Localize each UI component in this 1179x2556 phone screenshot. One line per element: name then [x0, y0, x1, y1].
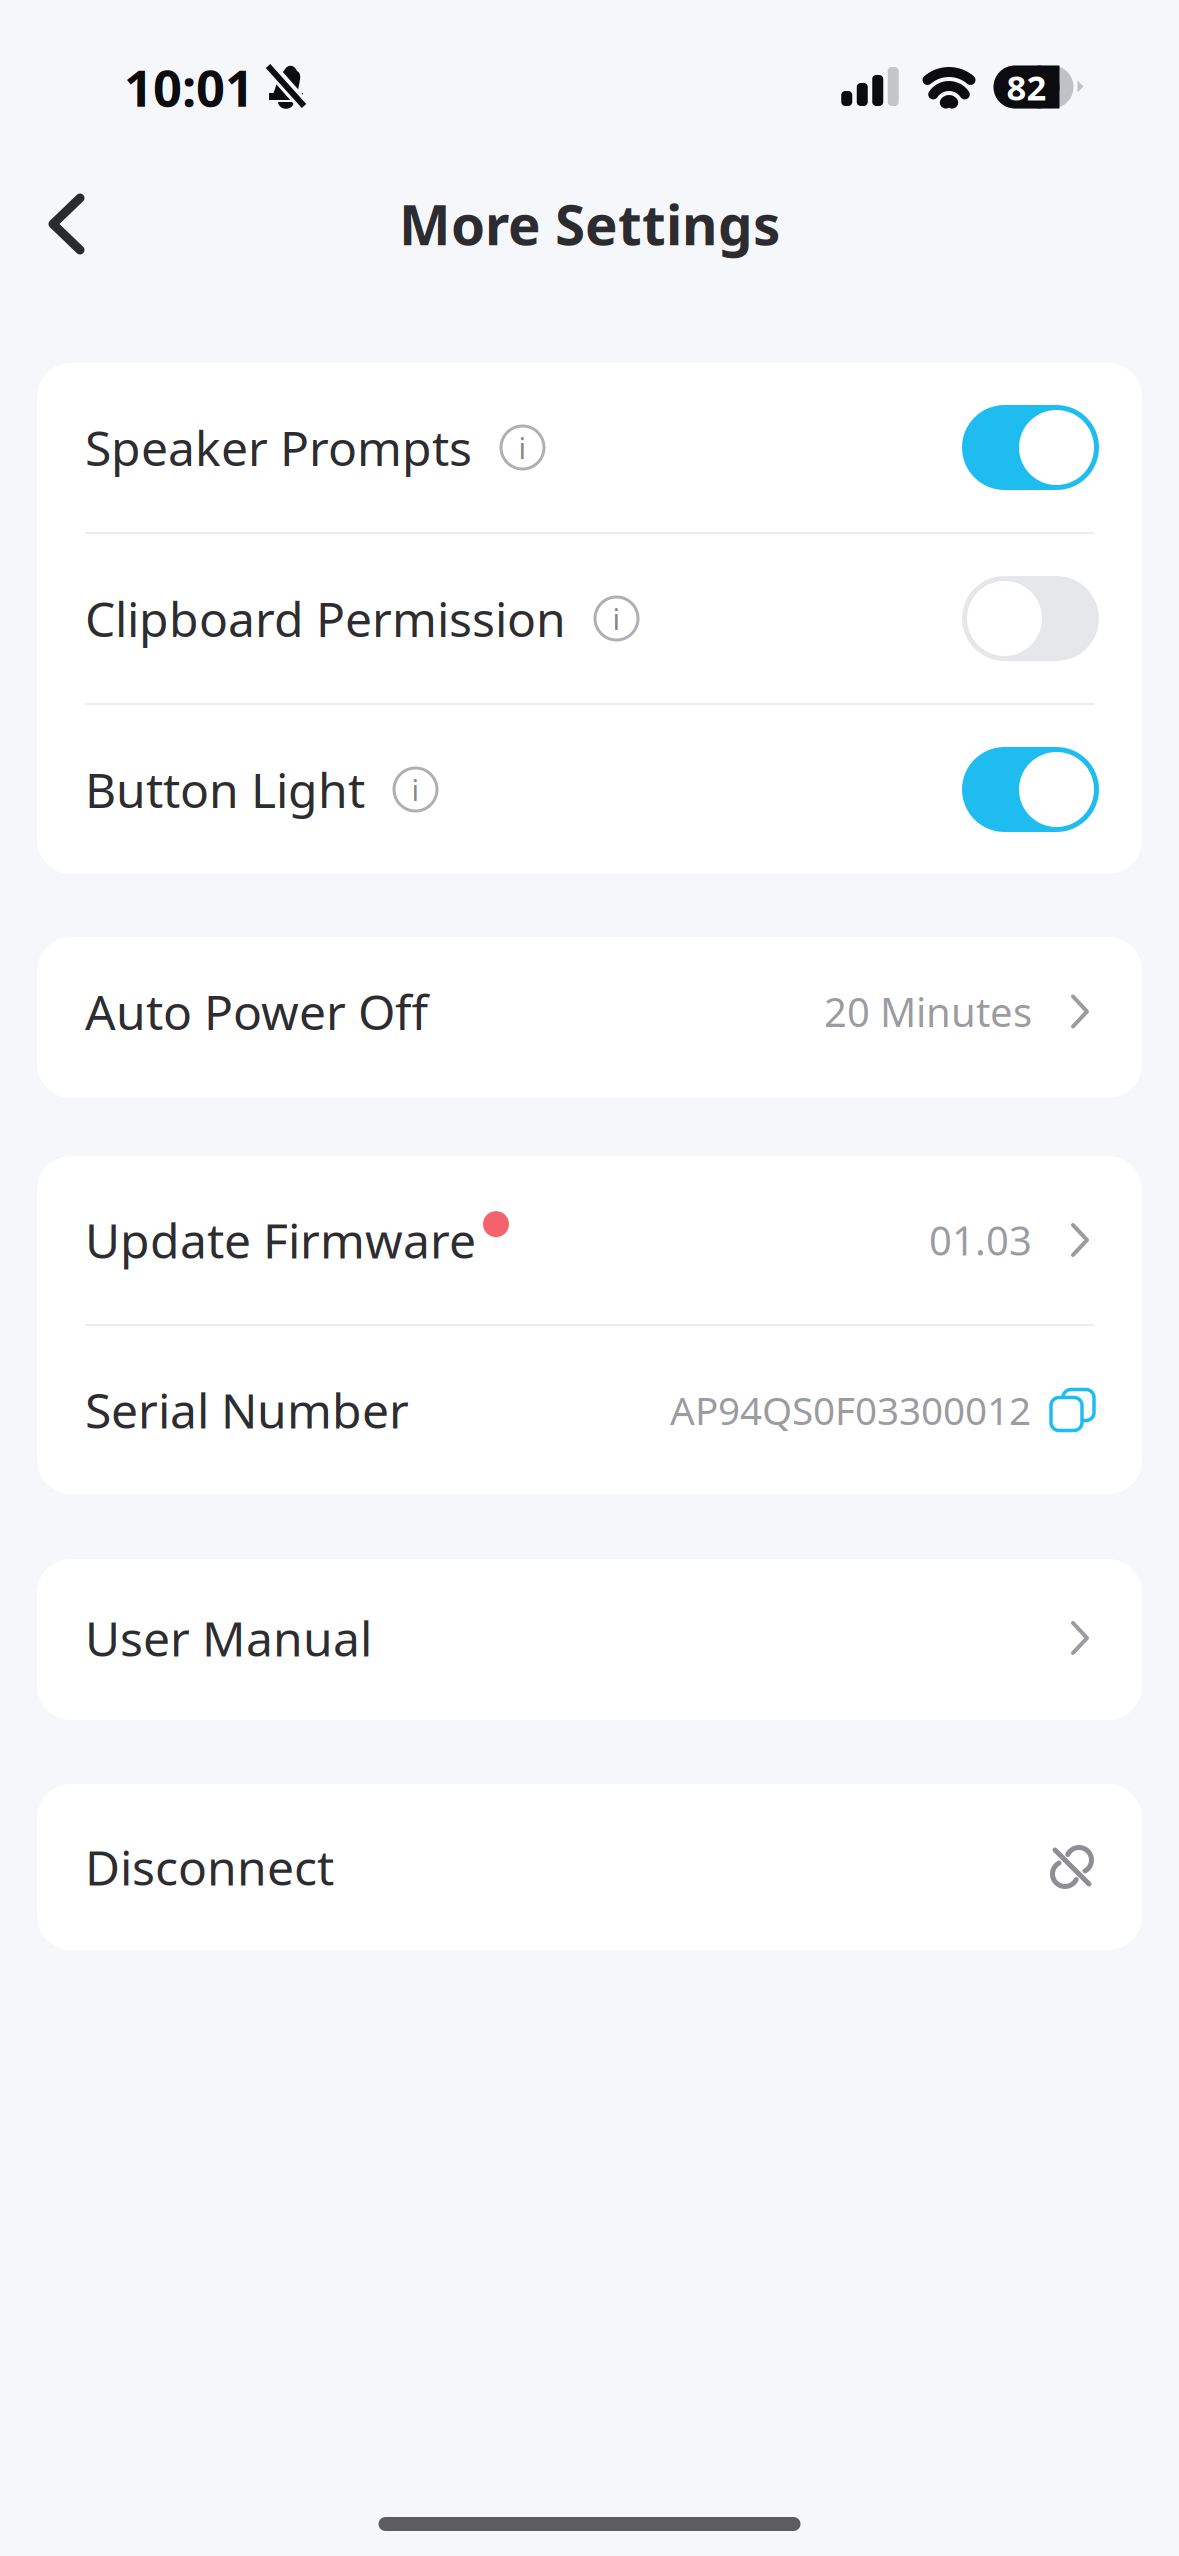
staticText: Serial Number — [85, 1378, 409, 1442]
staticText: AP94QS0F03300012 — [670, 1384, 1031, 1436]
staticText: i — [612, 599, 620, 638]
staticText: i — [518, 428, 526, 467]
button[interactable]: Back — [0, 171, 115, 277]
staticText: 10:01 — [124, 53, 254, 121]
staticText: Clipboard Permission — [85, 587, 566, 650]
staticText: Button Light — [85, 758, 365, 821]
staticText: Auto Power Off — [85, 980, 428, 1043]
button[interactable]: Update Firmware — [37, 1156, 1142, 1324]
staticText: More Settings — [399, 188, 780, 260]
button[interactable]: Clipboard Permission — [37, 534, 1142, 703]
button[interactable]: Auto Power Off — [37, 937, 1142, 1098]
staticText: 01.03 — [929, 1213, 1032, 1266]
button[interactable]: Serial Number — [37, 1326, 1142, 1494]
button[interactable]: Disconnect — [37, 1784, 1142, 1950]
button[interactable]: Speaker Prompts — [37, 363, 1142, 532]
button[interactable]: User Manual — [37, 1559, 1142, 1720]
staticText: User Manual — [85, 1606, 372, 1670]
staticText: i — [411, 770, 419, 809]
staticText: 82 — [1006, 64, 1046, 110]
staticText: 20 Minutes — [824, 985, 1032, 1038]
staticText: Speaker Prompts — [85, 416, 472, 479]
staticText: Update Firmware — [85, 1208, 476, 1272]
staticText: Disconnect — [85, 1835, 334, 1899]
button[interactable]: Button Light — [37, 705, 1142, 874]
